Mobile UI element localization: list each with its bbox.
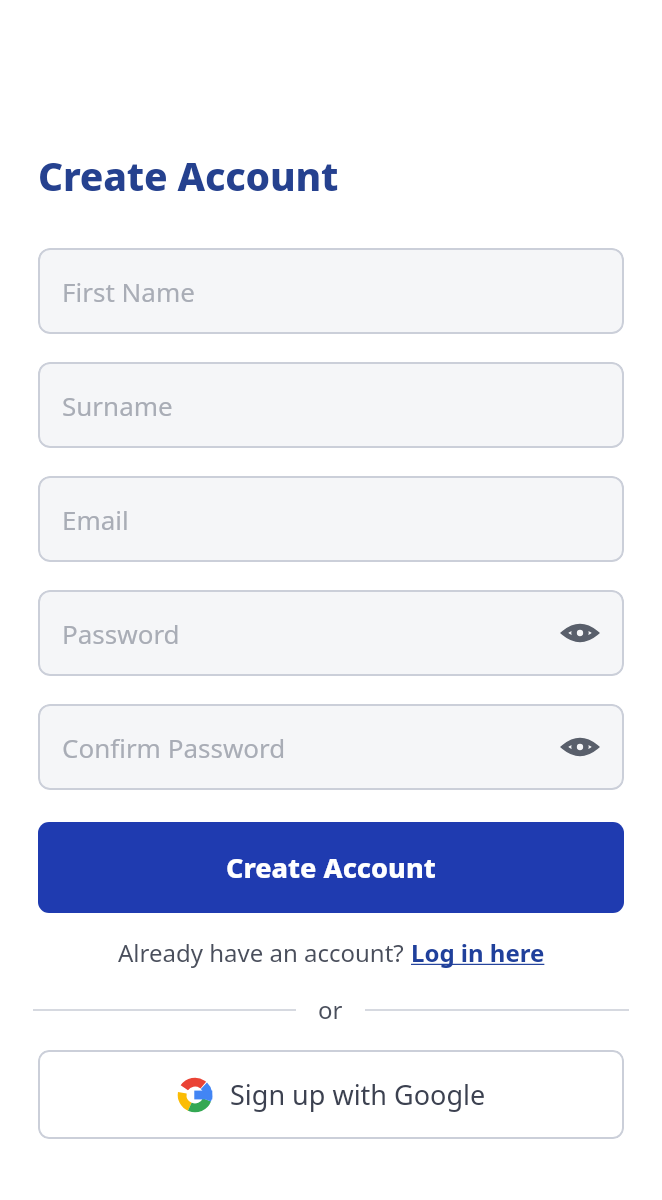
staticText: Log in here [411, 936, 545, 969]
staticText: Password [62, 616, 180, 651]
button[interactable]: Show password [560, 727, 600, 767]
button[interactable]: Create Account [38, 822, 624, 913]
staticText: Email [62, 502, 129, 537]
staticText: Sign up with Google [230, 1076, 486, 1113]
button[interactable]: Sign up with Google [38, 1050, 624, 1139]
button[interactable]: Confirm Password [38, 704, 624, 790]
button[interactable]: Log in here [411, 936, 545, 969]
staticText: First Name [62, 274, 195, 309]
staticText: Create Account [226, 849, 436, 886]
button[interactable]: Password [38, 590, 624, 676]
staticText: Surname [62, 388, 173, 423]
staticText: Confirm Password [62, 730, 286, 765]
staticText: Already have an account? [118, 936, 411, 969]
staticText: Create Account [38, 149, 339, 202]
button[interactable]: Surname [38, 362, 624, 448]
button[interactable]: Email [38, 476, 624, 562]
button[interactable]: Show password [560, 613, 600, 653]
button[interactable]: First Name [38, 248, 624, 334]
staticText: or [318, 993, 343, 1026]
